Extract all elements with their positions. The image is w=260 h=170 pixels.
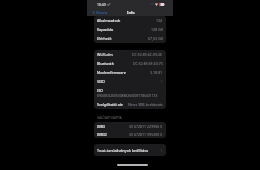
button[interactable]: Alkalmazások (94, 16, 166, 25)
staticText: DC:52:85:6F:40:75 (133, 61, 163, 66)
staticText: Nincs SIM-korlátozás (128, 102, 163, 107)
staticText: Bluetooth (97, 61, 114, 66)
staticText: EID (97, 88, 103, 93)
staticText: Alkalmazások (97, 18, 121, 23)
button[interactable]: Elérhető (94, 34, 166, 43)
staticText: 18:40 (97, 2, 106, 7)
staticText: IMEI (97, 124, 105, 129)
button[interactable]: EID (94, 86, 166, 99)
staticText: Wi-Fi-cím (97, 52, 113, 57)
button[interactable]: Szolgáltatói zár (94, 99, 166, 109)
staticText: HÁLÓZATI KÁRTYA (97, 116, 122, 120)
button[interactable]: IMEI (94, 122, 166, 130)
staticText: IMEI2 (97, 132, 107, 137)
staticText: Szolgáltatói zár (97, 102, 124, 107)
button[interactable]: Wi-Fi-cím (94, 50, 166, 59)
staticText: Modemfirmware (97, 70, 126, 75)
button[interactable]: Modemfirmware (94, 68, 166, 77)
button[interactable]: Kapacitás (94, 25, 166, 34)
button[interactable]: SEID (94, 77, 166, 86)
staticText: 35 672811 995300 0 (129, 132, 163, 137)
staticText: DC:52:85:6C:09:2E (132, 52, 163, 57)
button[interactable]: Bluetooth (94, 59, 166, 68)
staticText: 67,63 GB (148, 36, 163, 41)
staticText: 134 (156, 18, 163, 23)
staticText: Trust-tanúsítványok beállítása (97, 148, 149, 153)
staticText: Vissza (96, 10, 108, 15)
staticText: 35 672811 229956 0 (129, 124, 163, 129)
staticText: 3.18.81 (150, 70, 163, 75)
staticText: 128 GB (151, 27, 163, 32)
staticText: 89049032005008882600091786431133 (97, 93, 158, 97)
staticText: Kapacitás (97, 27, 114, 32)
button[interactable]: Vissza (92, 10, 108, 15)
button[interactable]: Trust-tanúsítványok beállítása (94, 144, 166, 156)
staticText: SEID (97, 79, 105, 84)
staticText: Info (127, 10, 135, 15)
staticText: Elérhető (97, 36, 112, 41)
button[interactable]: IMEI2 (94, 130, 166, 138)
